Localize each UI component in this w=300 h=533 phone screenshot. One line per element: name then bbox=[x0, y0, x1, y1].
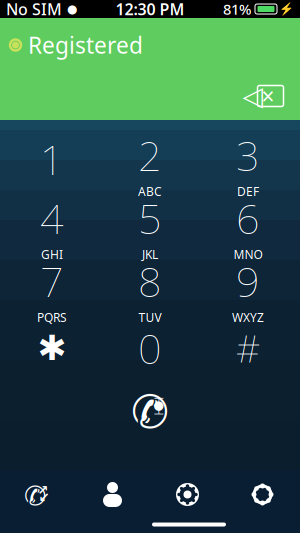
button[interactable]: 1 bbox=[3, 138, 101, 189]
staticText: 8 bbox=[138, 254, 162, 308]
button[interactable]: 3 bbox=[199, 138, 297, 189]
staticText: JKL bbox=[142, 246, 158, 262]
staticText: No SIM bbox=[6, 0, 62, 20]
staticText: 1 bbox=[40, 132, 64, 186]
staticText: Registered bbox=[28, 30, 143, 60]
button[interactable]: Delete bbox=[234, 80, 292, 112]
staticText: 7 bbox=[40, 254, 64, 308]
button[interactable]: 8 bbox=[101, 264, 199, 315]
button[interactable]: 2 bbox=[101, 138, 199, 189]
button[interactable]: Contacts bbox=[75, 472, 150, 516]
staticText: ✆ bbox=[131, 386, 169, 438]
button[interactable]: Settings bbox=[225, 472, 300, 516]
staticText: 2 bbox=[138, 128, 162, 182]
staticText: ● bbox=[67, 2, 77, 16]
staticText: 5 bbox=[138, 191, 162, 245]
button[interactable]: 6 bbox=[199, 201, 297, 252]
button[interactable]: Call bbox=[107, 386, 193, 438]
staticText: ↙ bbox=[38, 490, 49, 505]
staticText: 6 bbox=[236, 191, 260, 245]
staticText: ✱ bbox=[37, 328, 66, 368]
staticText: TUV bbox=[138, 309, 161, 325]
button[interactable]: ✱ bbox=[3, 327, 101, 378]
staticText: # bbox=[236, 323, 260, 373]
staticText: ↗ bbox=[37, 482, 48, 497]
staticText: 12:30 PM bbox=[115, 0, 184, 20]
staticText: WXYZ bbox=[232, 309, 264, 325]
button[interactable]: 9 bbox=[199, 264, 297, 315]
staticText: ⚡ bbox=[279, 2, 294, 16]
button[interactable]: 7 bbox=[3, 264, 101, 315]
staticText: 4 bbox=[40, 191, 64, 245]
staticText: PQRS bbox=[37, 309, 67, 325]
button[interactable]: Keypad bbox=[150, 472, 225, 516]
staticText: 3 bbox=[236, 128, 260, 182]
staticText: ⧳ bbox=[153, 397, 163, 414]
staticText: 9 bbox=[236, 254, 260, 308]
staticText: GHI bbox=[41, 246, 63, 262]
staticText: ◁ bbox=[242, 81, 263, 111]
staticText: MNO bbox=[233, 246, 262, 262]
button[interactable]: # bbox=[199, 327, 297, 378]
staticText: ✆ bbox=[24, 481, 46, 511]
staticText: 81% bbox=[223, 0, 251, 19]
staticText: ABC bbox=[138, 183, 162, 199]
button[interactable]: Recents bbox=[0, 472, 75, 516]
staticText: DEF bbox=[237, 183, 259, 199]
staticText: 0 bbox=[138, 321, 162, 375]
button[interactable]: 5 bbox=[101, 201, 199, 252]
staticText: × bbox=[261, 81, 274, 111]
button[interactable]: 0 bbox=[101, 327, 199, 378]
button[interactable]: 4 bbox=[3, 201, 101, 252]
